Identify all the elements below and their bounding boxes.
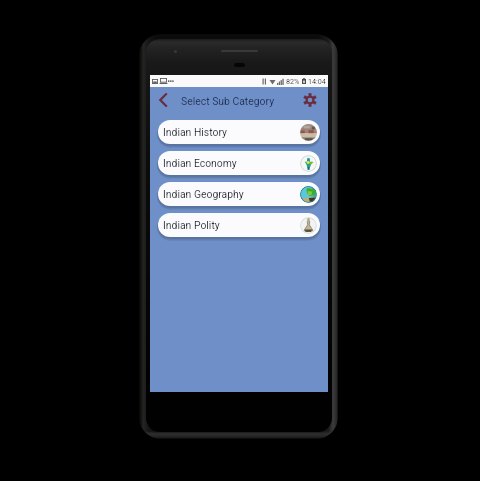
staticText: Indian Polity	[163, 219, 220, 231]
button[interactable]: Settings	[303, 93, 317, 107]
staticText: Indian Economy	[163, 157, 237, 169]
staticText: Indian History	[163, 126, 227, 138]
staticText: 14:04	[308, 77, 326, 85]
button[interactable]: Indian Polity	[158, 213, 320, 237]
button[interactable]: Indian Geography	[158, 182, 320, 206]
button[interactable]: Indian History	[158, 120, 320, 144]
button[interactable]: Back	[155, 92, 171, 108]
staticText: Indian Geography	[163, 188, 244, 200]
staticText: Select Sub Category	[181, 95, 275, 107]
staticText: 82%	[286, 77, 300, 85]
button[interactable]: Indian Economy	[158, 151, 320, 175]
